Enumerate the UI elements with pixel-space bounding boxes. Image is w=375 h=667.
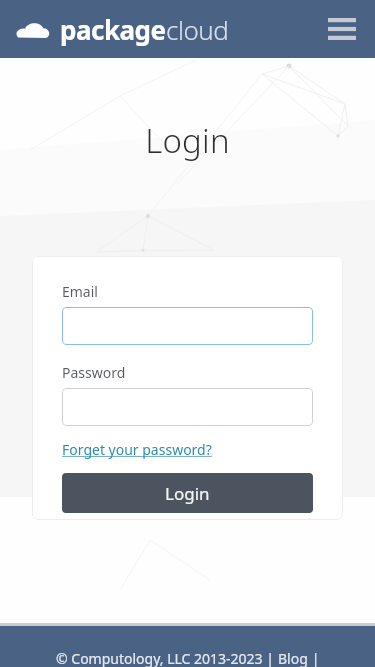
staticText: © Computology, LLC 2013-2023 | bbox=[56, 649, 278, 667]
staticText: Login bbox=[165, 482, 210, 505]
button[interactable]: Password input bbox=[62, 388, 313, 426]
staticText: Forget your password? bbox=[62, 440, 212, 459]
staticText: package bbox=[60, 12, 166, 47]
staticText: cloud bbox=[166, 12, 229, 47]
staticText: Password bbox=[62, 363, 126, 382]
button[interactable]: Login bbox=[62, 473, 313, 513]
button[interactable]: Menu bbox=[327, 16, 357, 42]
staticText: Login bbox=[145, 118, 230, 163]
button[interactable]: Email input bbox=[62, 307, 313, 345]
staticText: Blog bbox=[278, 649, 308, 667]
button[interactable]: Blog bbox=[278, 649, 308, 667]
staticText: Email bbox=[62, 282, 98, 301]
button[interactable]: Forget your password? bbox=[62, 440, 212, 459]
staticText: | bbox=[308, 649, 320, 667]
button[interactable]: package bbox=[16, 12, 229, 47]
